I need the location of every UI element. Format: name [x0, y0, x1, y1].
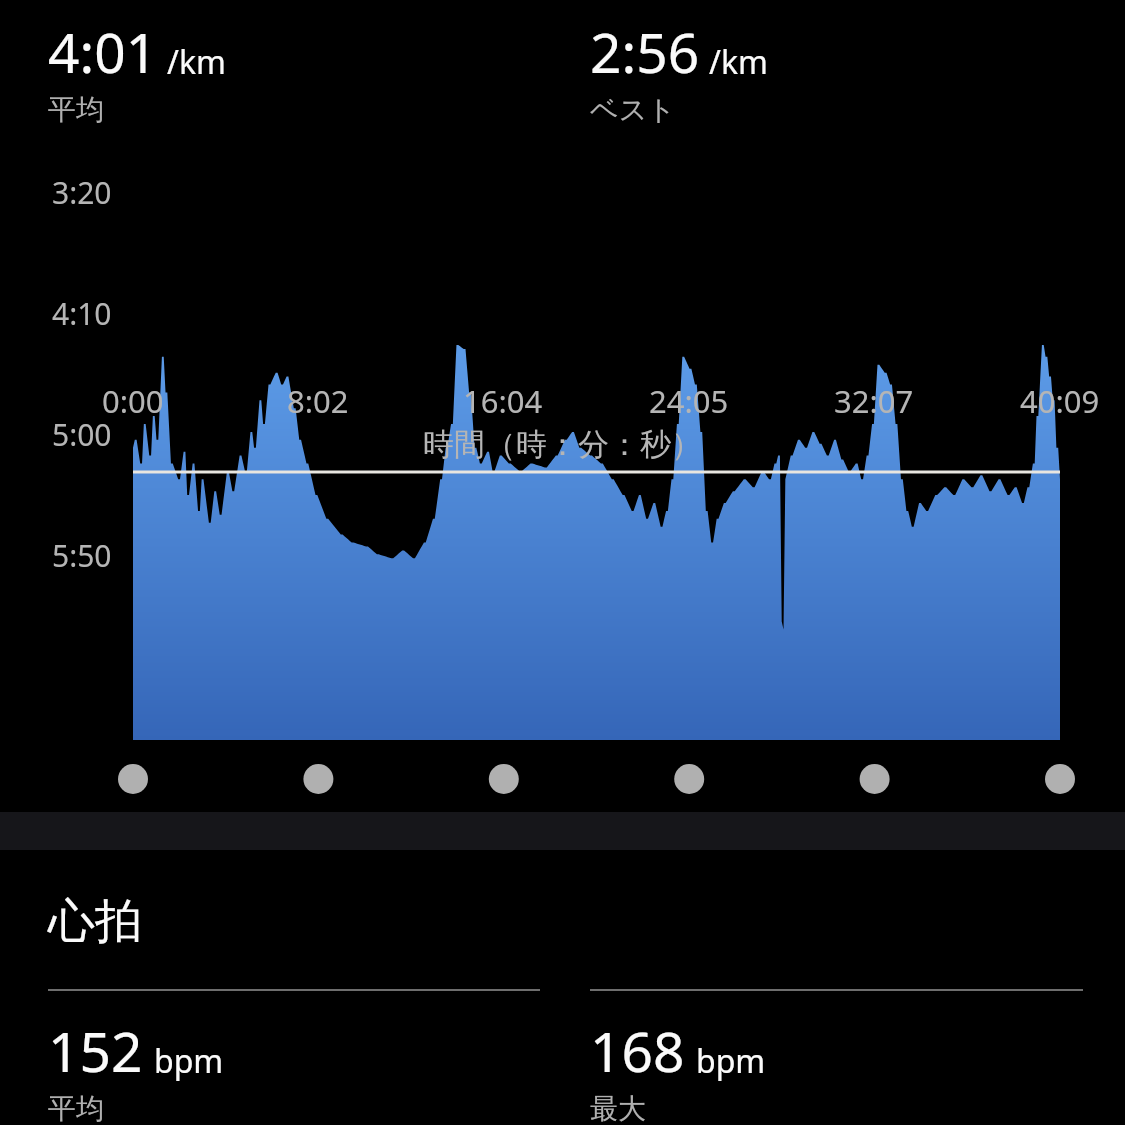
staticText: 5:50	[52, 535, 112, 576]
staticText: 2:56	[590, 14, 700, 89]
staticText: 4:10	[52, 293, 112, 334]
staticText: ベスト	[590, 92, 676, 127]
staticText: 40:09	[1020, 380, 1100, 422]
staticText: 時間（時：分：秒）	[423, 425, 702, 464]
staticText: 平均	[48, 1091, 104, 1125]
staticText: 平均	[48, 92, 104, 127]
button[interactable]: 168	[562, 989, 1125, 1125]
staticText: /km	[167, 40, 226, 84]
staticText: 32:07	[834, 380, 914, 422]
staticText: /km	[709, 40, 768, 84]
staticText: 152	[48, 1013, 143, 1088]
staticText: 最大	[590, 1091, 646, 1125]
button[interactable]: 4:01	[0, 0, 562, 127]
staticText: 心拍	[48, 892, 142, 951]
staticText: 3:20	[52, 172, 112, 213]
staticText: 5:00	[52, 414, 112, 455]
staticText: 168	[590, 1013, 685, 1088]
staticText: 0:00	[102, 380, 164, 422]
staticText: 24:05	[649, 380, 729, 422]
button[interactable]: 152	[0, 989, 562, 1125]
staticText: bpm	[696, 1039, 766, 1083]
staticText: bpm	[154, 1039, 224, 1083]
staticText: 8:02	[287, 380, 349, 422]
staticText: 4:01	[48, 14, 158, 89]
button[interactable]: 2:56	[562, 0, 1125, 127]
staticText: 16:04	[463, 380, 543, 422]
